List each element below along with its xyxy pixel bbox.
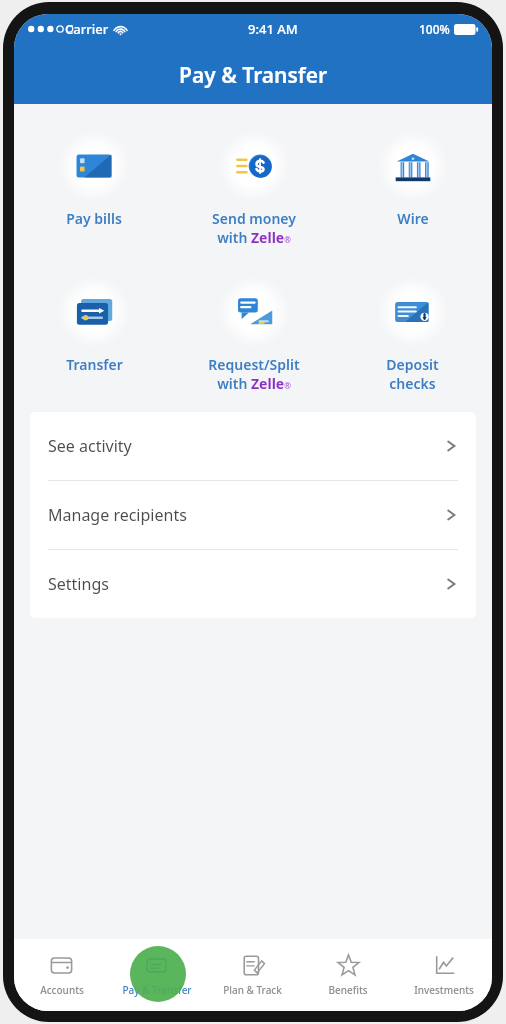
staticText: with Zelle® xyxy=(217,374,291,393)
staticText: Deposit xyxy=(386,355,439,374)
button[interactable]: Accounts xyxy=(14,939,109,1011)
button[interactable]: See activity xyxy=(30,412,476,481)
staticText: Send money xyxy=(212,209,296,228)
button[interactable]: Manage recipients xyxy=(30,481,476,550)
button[interactable]: Investments xyxy=(396,939,492,1011)
button[interactable]: Deposit xyxy=(333,274,492,395)
button[interactable]: Wire xyxy=(333,128,492,230)
staticText: Request/Split xyxy=(208,355,300,374)
button[interactable]: Pay & Transfer xyxy=(109,939,204,1011)
button[interactable]: Transfer xyxy=(14,274,174,376)
staticText: Wire xyxy=(397,209,429,228)
staticText: Settings xyxy=(48,573,109,595)
button[interactable]: Plan & Track xyxy=(204,939,300,1011)
staticText: Manage recipients xyxy=(48,504,187,526)
staticText: Pay bills xyxy=(66,209,122,228)
staticText: 9:41 AM xyxy=(248,20,298,38)
staticText: Plan & Track xyxy=(223,983,282,997)
staticText: Investments xyxy=(414,983,474,997)
button[interactable]: Send money xyxy=(174,128,333,249)
staticText: Carrier xyxy=(65,20,109,38)
staticText: See activity xyxy=(48,435,132,457)
staticText: Benefits xyxy=(328,983,368,997)
staticText: Pay & Transfer xyxy=(122,983,192,997)
staticText: checks xyxy=(389,374,436,393)
staticText: with Zelle® xyxy=(217,228,291,247)
button[interactable]: Request/Split xyxy=(174,274,333,395)
staticText: Pay & Transfer xyxy=(179,61,328,90)
button[interactable]: Pay bills xyxy=(14,128,174,230)
button[interactable]: Settings xyxy=(30,550,476,618)
staticText: 100% xyxy=(419,21,450,37)
button[interactable]: Benefits xyxy=(300,939,396,1011)
staticText: Transfer xyxy=(66,355,123,374)
staticText: Accounts xyxy=(40,983,84,997)
